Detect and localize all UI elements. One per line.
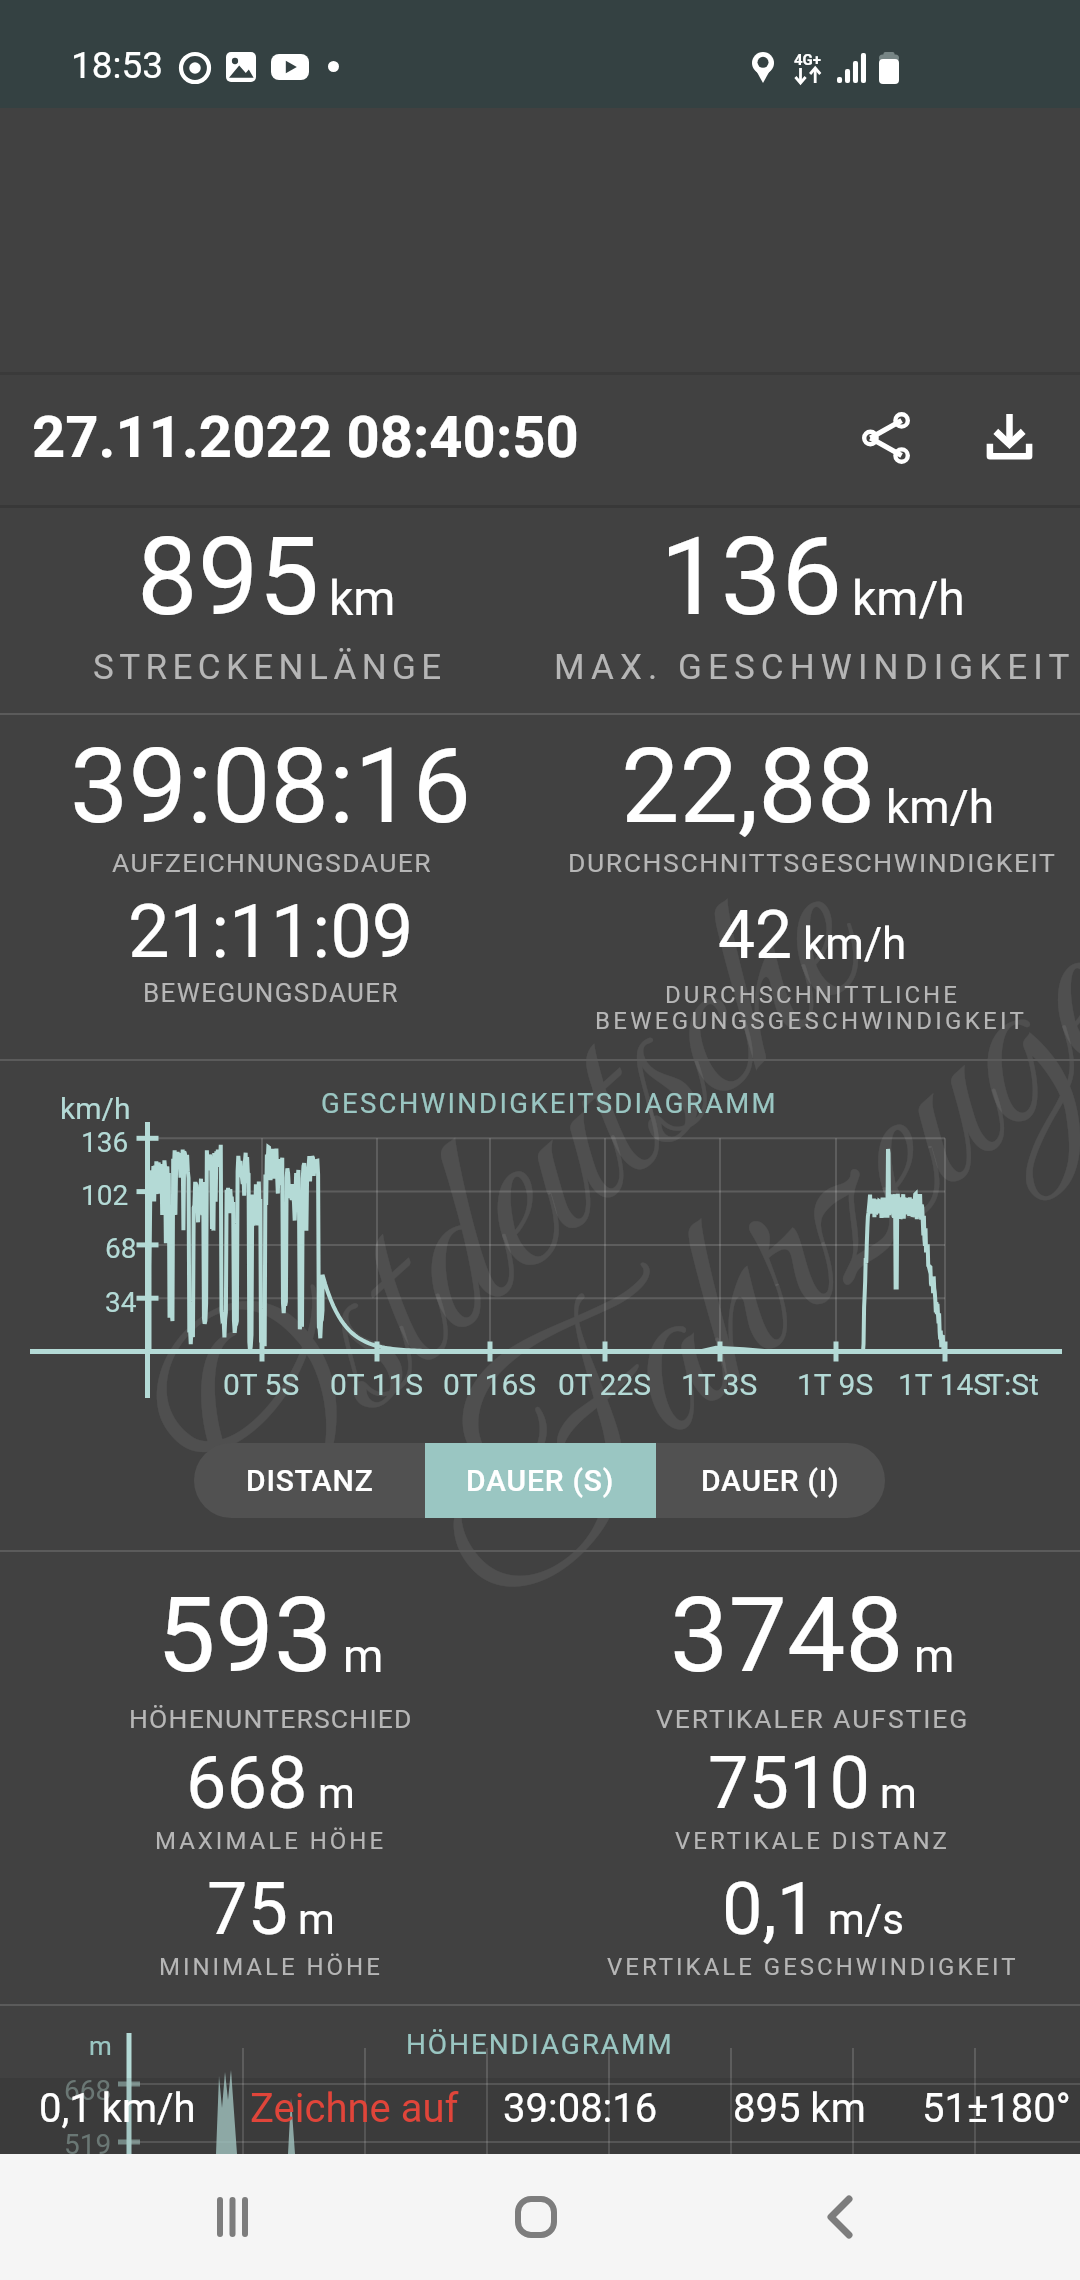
staticText: GESCHWINDIGKEITSDIAGRAMM <box>321 1087 778 1119</box>
staticText: m <box>914 1629 955 1683</box>
staticText: 593 <box>157 1575 333 1697</box>
staticText: VERTIKALE DISTANZ <box>675 1827 950 1855</box>
button[interactable]: Download <box>951 378 1067 494</box>
staticText: DURCHSCHNITTLICHE <box>665 981 960 1009</box>
staticText: 0,1 km/h <box>39 2085 196 2132</box>
staticText: AUFZEICHNUNGSDAUER <box>112 847 432 878</box>
staticText: 519 <box>64 2128 112 2161</box>
staticText: 668 <box>186 1741 308 1825</box>
staticText: 18:53 <box>71 44 164 87</box>
staticText: 1T 14S <box>898 1367 992 1402</box>
button[interactable]: Home <box>476 2154 596 2280</box>
staticText: 39:08:16 <box>70 726 472 848</box>
staticText: 68 <box>105 1232 137 1265</box>
staticText: VERTIKALER AUFSTIEG <box>656 1703 970 1734</box>
staticText: km <box>329 570 396 626</box>
staticText: 102 <box>81 1179 129 1212</box>
staticText: Zeichne auf <box>250 2085 459 2132</box>
button[interactable]: Share <box>828 380 944 496</box>
staticText: 51±180° <box>922 2085 1071 2132</box>
staticText: HÖHENDIAGRAMM <box>406 2028 674 2061</box>
staticText: m <box>343 1629 384 1683</box>
staticText: 39:08:16 <box>503 2085 658 2132</box>
staticText: km/h <box>852 570 965 626</box>
staticText: T:St <box>986 1367 1039 1402</box>
staticText: 4G+ <box>794 51 822 69</box>
staticText: m <box>318 1769 355 1818</box>
staticText: 668 <box>64 2074 112 2107</box>
staticText: BEWEGUNGSDAUER <box>143 978 399 1008</box>
staticText: Fahrzeuge <box>356 877 1080 1673</box>
staticText: 42 <box>718 897 793 974</box>
staticText: 3748 <box>670 1575 904 1697</box>
button[interactable]: Recent apps <box>172 2154 292 2280</box>
staticText: 136 <box>81 1126 129 1159</box>
staticText: Ostdeutsche <box>105 816 932 1603</box>
staticText: HÖHENUNTERSCHIED <box>129 1703 413 1734</box>
staticText: 0T 11S <box>330 1367 424 1402</box>
staticText: 0T 22S <box>558 1367 652 1402</box>
staticText: 895 <box>137 514 320 641</box>
staticText: 34 <box>105 1286 137 1319</box>
staticText: DAUER (S) <box>466 1463 615 1498</box>
staticText: MAXIMALE HÖHE <box>155 1827 387 1855</box>
staticText: 1T 9S <box>797 1367 874 1402</box>
staticText: DISTANZ <box>246 1463 374 1498</box>
staticText: BEWEGUNGSGESCHWINDIGKEIT <box>595 1007 1028 1035</box>
staticText: STRECKENLÄNGE <box>93 647 447 688</box>
staticText: 0T 16S <box>443 1367 537 1402</box>
staticText: VERTIKALE GESCHWINDIGKEIT <box>607 1953 1019 1981</box>
staticText: km/h <box>886 780 994 834</box>
staticText: 7510 <box>708 1741 870 1825</box>
staticText: 895 km <box>733 2085 866 2132</box>
staticText: m/s <box>828 1895 904 1944</box>
staticText: 0T 5S <box>223 1367 300 1402</box>
staticText: km/h <box>60 1091 131 1126</box>
staticText: DAUER (I) <box>701 1463 840 1498</box>
staticText: DURCHSCHNITTSGESCHWINDIGKEIT <box>568 847 1057 878</box>
staticText: 22,88 <box>621 726 876 848</box>
button[interactable]: DAUER (I) <box>656 1443 885 1518</box>
staticText: m <box>89 2031 112 2061</box>
button[interactable]: Back <box>780 2154 900 2280</box>
staticText: 136 <box>660 514 843 641</box>
staticText: m <box>298 1895 335 1944</box>
staticText: MINIMALE HÖHE <box>159 1953 383 1981</box>
staticText: 1T 3S <box>681 1367 758 1402</box>
button[interactable]: DISTANZ <box>194 1443 425 1518</box>
button[interactable]: DAUER (S) <box>425 1443 656 1518</box>
staticText: km/h <box>803 918 907 970</box>
staticText: 27.11.2022 08:40:50 <box>32 403 579 471</box>
staticText: MAX. GESCHWINDIGKEIT <box>554 647 1076 688</box>
staticText: m <box>880 1769 917 1818</box>
staticText: 21:11:09 <box>128 888 414 975</box>
staticText: 0,1 <box>722 1867 818 1951</box>
staticText: 75 <box>207 1867 288 1951</box>
